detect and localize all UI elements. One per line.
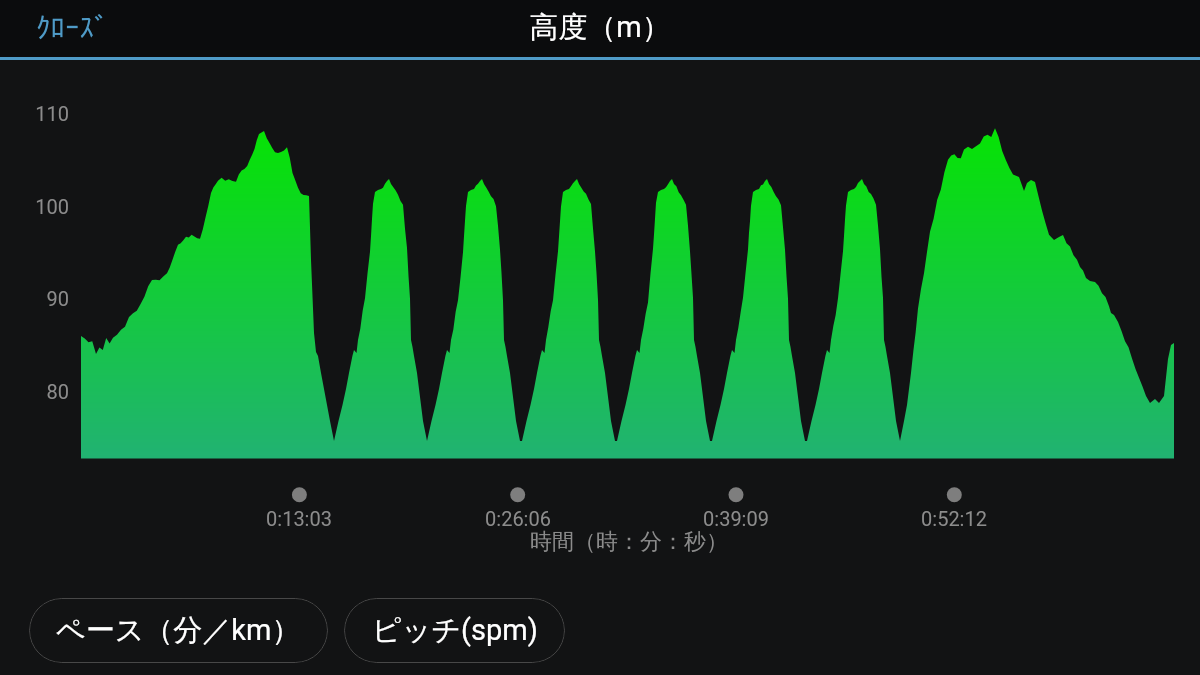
button[interactable]: Close bbox=[20, 2, 125, 51]
staticText: 0:26:06 bbox=[448, 507, 588, 530]
button[interactable]: ピッチ(spm) bbox=[344, 598, 565, 663]
staticText: 時間（時：分：秒） bbox=[529, 528, 729, 556]
staticText: 0:39:09 bbox=[666, 507, 806, 530]
staticText: 高度（m） bbox=[0, 9, 1200, 46]
staticText: 90 bbox=[0, 287, 69, 310]
staticText: 0:52:12 bbox=[884, 507, 1024, 530]
button[interactable]: ペース（分／km） bbox=[29, 598, 328, 663]
staticText: ペース（分／km） bbox=[56, 612, 301, 649]
staticText: ｸﾛｰｽﾞ bbox=[36, 12, 109, 41]
staticText: 110 bbox=[0, 102, 69, 125]
staticText: ピッチ(spm) bbox=[372, 612, 538, 649]
staticText: 80 bbox=[0, 380, 69, 403]
staticText: 0:13:03 bbox=[229, 507, 369, 530]
staticText: 100 bbox=[0, 195, 69, 218]
